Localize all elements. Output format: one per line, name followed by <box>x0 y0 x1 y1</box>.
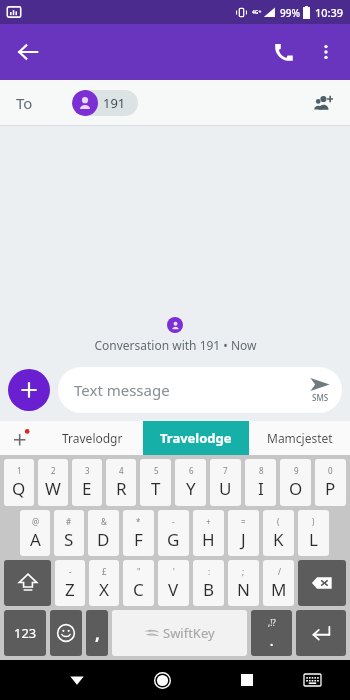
staticText: Travelodge <box>160 429 232 447</box>
button[interactable]: & <box>88 510 119 556</box>
staticText: Mamcjestet <box>267 430 333 446</box>
staticText: 4 <box>119 465 124 476</box>
staticText: 123 <box>14 624 37 642</box>
button[interactable]: 5 <box>140 459 171 506</box>
button[interactable]: ( <box>263 510 294 556</box>
button[interactable]: Attach <box>8 369 50 411</box>
staticText: £ <box>102 566 107 577</box>
button[interactable]: " <box>123 560 154 606</box>
button[interactable]: Back <box>8 32 48 72</box>
staticText: 2 <box>51 465 56 476</box>
button[interactable]: + <box>193 510 224 556</box>
staticText: & <box>101 516 107 527</box>
staticText: SMS <box>312 392 329 403</box>
staticText: " <box>137 566 141 577</box>
staticText: ) <box>312 516 315 527</box>
staticText: * <box>136 516 141 527</box>
button[interactable]: More options <box>306 32 346 72</box>
staticText: 6 <box>189 465 194 476</box>
button[interactable]: Text message <box>58 367 342 413</box>
button[interactable]: 6 <box>175 459 206 506</box>
button[interactable]: Travelodge <box>143 421 249 455</box>
staticText: ( <box>277 516 280 527</box>
staticText: : <box>208 566 211 577</box>
button[interactable]: # <box>54 510 84 556</box>
button[interactable]: * <box>123 510 154 556</box>
button[interactable]: 7 <box>210 459 241 506</box>
button[interactable]: Add clipboard <box>0 421 42 455</box>
button[interactable]: 1 <box>4 459 34 506</box>
button[interactable]: @ <box>20 510 50 556</box>
button[interactable]: 3 <box>72 459 102 506</box>
staticText: J <box>241 528 246 551</box>
button[interactable]: ; <box>228 560 259 606</box>
staticText: W <box>45 477 61 500</box>
staticText: L <box>309 528 318 551</box>
button[interactable]: Keyboard <box>292 660 332 700</box>
button[interactable]: - <box>55 560 85 606</box>
button[interactable]: ,!? <box>251 610 292 656</box>
button[interactable]: Call <box>262 30 306 74</box>
button[interactable]: £ <box>89 560 119 606</box>
staticText: = <box>241 516 246 527</box>
staticText: 8 <box>259 465 264 476</box>
staticText: B <box>203 578 215 601</box>
staticText: To <box>16 93 33 113</box>
staticText: ,!? <box>268 617 276 628</box>
staticText: Travelodgr <box>62 430 123 446</box>
button[interactable]: Enter <box>296 610 346 656</box>
button[interactable]: : <box>193 560 224 606</box>
staticText: 99% <box>280 6 300 20</box>
staticText: Z <box>65 578 75 601</box>
staticText: U <box>219 477 232 500</box>
button[interactable]: / <box>263 560 294 606</box>
staticText: G <box>167 528 180 551</box>
staticText: Text message <box>74 380 170 400</box>
staticText: K <box>273 528 284 551</box>
button[interactable]: 0 <box>315 459 346 506</box>
staticText: X <box>99 578 109 601</box>
staticText: SwiftKey <box>163 624 215 642</box>
button[interactable]: Emoji <box>50 610 82 656</box>
staticText: R <box>116 477 127 500</box>
button[interactable]: Add people <box>306 86 340 120</box>
button[interactable]: = <box>228 510 259 556</box>
button[interactable]: 191 <box>72 90 138 116</box>
button[interactable]: Space <box>112 610 247 656</box>
button[interactable]: 8 <box>245 459 276 506</box>
staticText: 191 <box>103 94 126 112</box>
button[interactable]: Home <box>142 660 182 700</box>
button[interactable]: ' <box>158 560 189 606</box>
staticText: 10:39 <box>315 5 344 20</box>
staticText: H <box>202 528 215 551</box>
staticText: P <box>325 477 336 500</box>
staticText: V <box>168 578 179 601</box>
staticText: - <box>69 566 72 577</box>
staticText: O <box>289 477 303 500</box>
staticText: A <box>30 528 41 551</box>
button[interactable]: 4 <box>106 459 136 506</box>
button[interactable]: ) <box>298 510 329 556</box>
staticText: D <box>97 528 110 551</box>
button[interactable]: 2 <box>38 459 68 506</box>
button[interactable]: , <box>86 610 108 656</box>
staticText: 1 <box>17 465 22 476</box>
staticText: @ <box>32 516 40 527</box>
button[interactable]: 123 <box>4 610 46 656</box>
staticText: 0 <box>328 465 333 476</box>
button[interactable]: 9 <box>280 459 311 506</box>
staticText: . <box>270 633 274 649</box>
button[interactable]: Recents <box>227 660 267 700</box>
button[interactable]: Send SMS <box>310 377 330 403</box>
staticText: I <box>258 477 264 500</box>
button[interactable]: Backspace <box>298 560 346 606</box>
staticText: E <box>82 477 92 500</box>
button[interactable]: Travelodgr <box>42 421 143 455</box>
button[interactable]: - <box>158 510 189 556</box>
staticText: / <box>278 566 281 577</box>
staticText: S <box>64 528 74 551</box>
button[interactable]: Shift <box>4 560 51 606</box>
button[interactable]: Mamcjestet <box>249 421 350 455</box>
button[interactable]: Back <box>57 660 97 700</box>
staticText: 9 <box>294 465 299 476</box>
